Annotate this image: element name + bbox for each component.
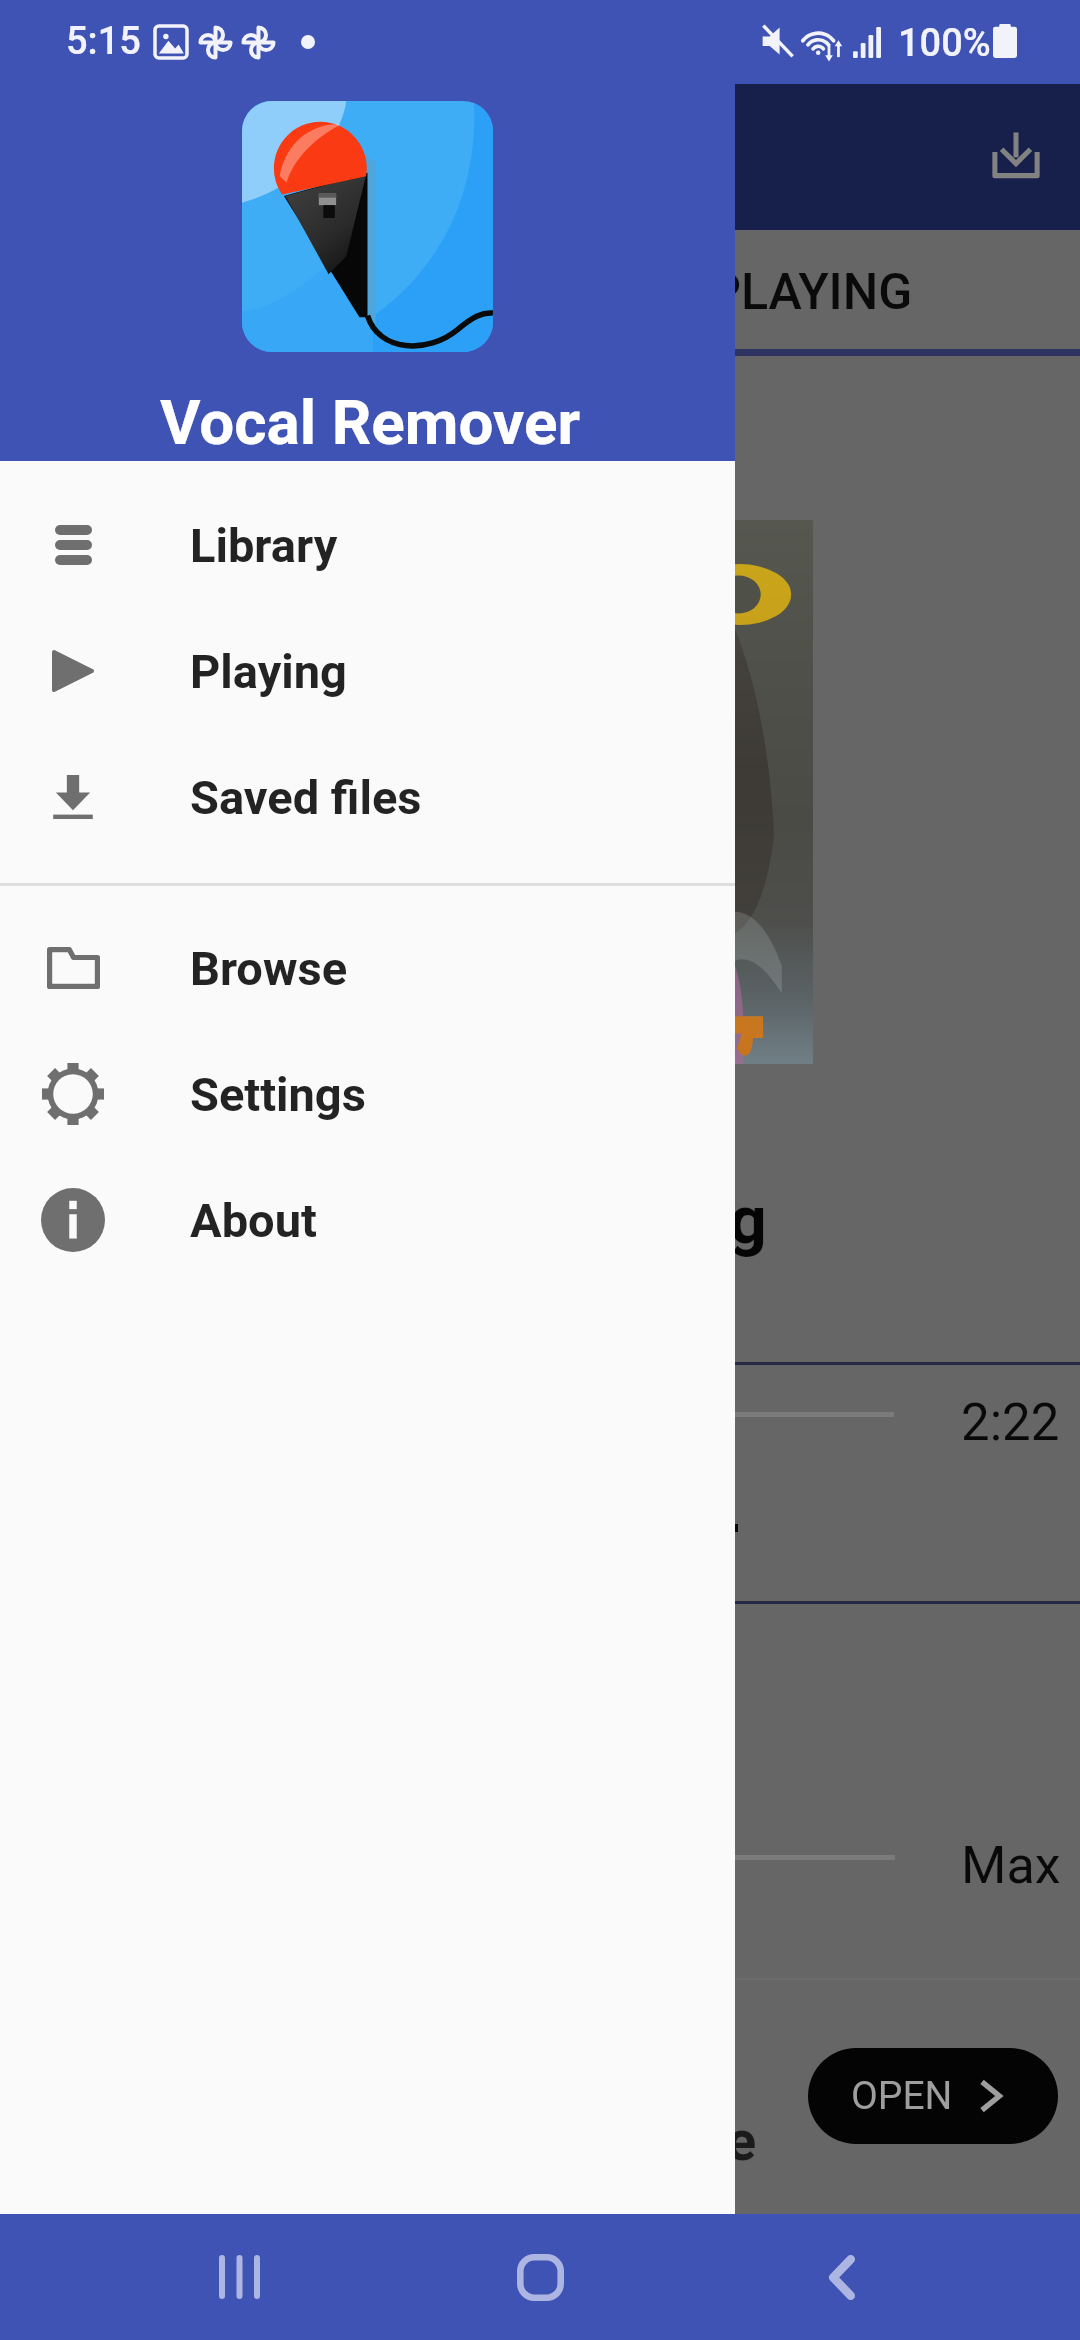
staticText: Browse	[190, 941, 348, 996]
button[interactable]: Download	[961, 100, 1071, 210]
button[interactable]: Home	[477, 2214, 603, 2340]
staticText: 2:22	[961, 1393, 1060, 1453]
staticText: About	[190, 1193, 317, 1248]
button[interactable]: Saved files	[0, 734, 735, 860]
button[interactable]: OPEN	[808, 2048, 1058, 2144]
staticText: Saved files	[190, 770, 422, 825]
staticText: Settings	[190, 1067, 366, 1122]
staticText: PLAYING	[709, 263, 913, 322]
button[interactable]: Recents	[176, 2214, 302, 2340]
staticText: OPEN	[851, 2073, 953, 2119]
staticText: Library	[190, 518, 338, 573]
staticText: Playing	[190, 644, 347, 699]
staticText: e	[726, 2108, 757, 2174]
button[interactable]: Library	[0, 482, 735, 608]
button[interactable]: Playing	[0, 608, 735, 734]
staticText: g	[729, 1182, 767, 1259]
button[interactable]: Back	[779, 2214, 905, 2340]
button[interactable]: PLAYING	[540, 230, 1080, 349]
staticText: 5:15	[66, 19, 141, 64]
staticText: Vocal Remover	[160, 386, 581, 459]
button[interactable]: Browse	[0, 905, 735, 1031]
button[interactable]: About	[0, 1157, 735, 1283]
staticText: 100%	[898, 21, 991, 66]
button[interactable]: Settings	[0, 1031, 735, 1157]
staticText: Max	[961, 1835, 1061, 1896]
